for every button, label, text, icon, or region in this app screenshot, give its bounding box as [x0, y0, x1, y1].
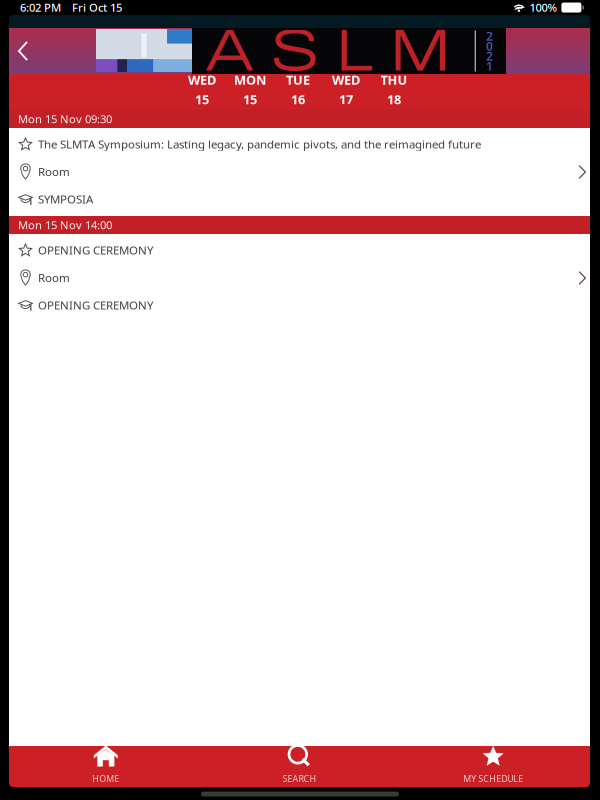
staticText: Mon 15 Nov 14:00 [18, 217, 112, 233]
button[interactable]: WED [322, 74, 370, 110]
staticText: 0 [486, 38, 493, 54]
staticText: 2 [486, 28, 493, 44]
staticText: 15 [243, 90, 257, 108]
staticText: The SLMTA Symposium: Lasting legacy, pan… [38, 136, 481, 152]
staticText: MON [234, 71, 266, 88]
button[interactable]: WED [178, 74, 226, 110]
staticText: Fri Oct 15 [72, 0, 122, 15]
staticText: HOME [92, 772, 119, 784]
staticText: WED [188, 71, 216, 88]
staticText: WED [332, 71, 360, 88]
staticText: MY SCHEDULE [463, 772, 523, 784]
staticText: Room [38, 164, 70, 179]
staticText: Room [38, 270, 70, 285]
staticText: 15 [195, 90, 209, 108]
staticText: ASLM [204, 19, 452, 83]
staticText: OPENING CEREMONY [38, 297, 153, 313]
button[interactable]: THU [370, 74, 418, 110]
staticText: 16 [291, 90, 305, 108]
button[interactable]: Back [9, 28, 61, 74]
staticText: SEARCH [282, 772, 316, 784]
staticText: SYMPOSIA [38, 191, 93, 207]
staticText: 18 [387, 90, 401, 108]
button[interactable]: The SLMTA Symposium: Lasting legacy, pan… [9, 128, 590, 216]
button[interactable]: HOME [9, 746, 203, 787]
staticText: 100% [529, 0, 557, 15]
button[interactable]: MY SCHEDULE [396, 746, 590, 787]
staticText: THU [380, 71, 407, 88]
staticText: OPENING CEREMONY [38, 242, 153, 258]
staticText: 2 [486, 48, 493, 64]
staticText: 6:02 PM [20, 0, 61, 15]
button[interactable]: MON [226, 74, 274, 110]
staticText: 17 [339, 90, 353, 108]
button[interactable]: TUE [274, 74, 322, 110]
button[interactable]: SEARCH [203, 746, 396, 787]
staticText: 1 [486, 58, 493, 74]
button[interactable]: OPENING CEREMONY [9, 234, 590, 322]
staticText: Mon 15 Nov 09:30 [18, 111, 112, 127]
staticText: TUE [286, 71, 310, 88]
